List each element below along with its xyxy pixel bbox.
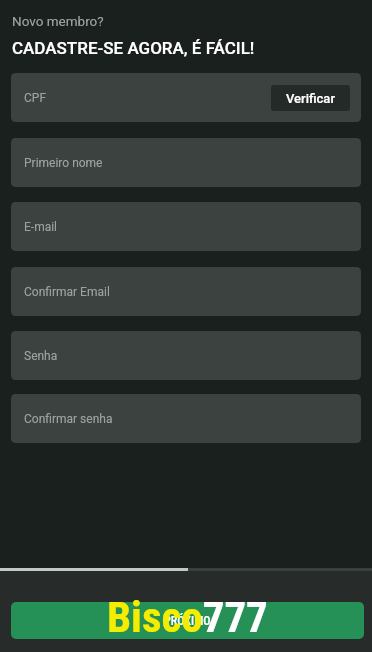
staticText: CPF (24, 91, 47, 105)
staticText: Senha (24, 349, 58, 363)
staticText: Primeiro nome (24, 156, 103, 170)
button[interactable]: E-mail (11, 202, 361, 251)
staticText: PRÓXIMO (164, 614, 211, 628)
button[interactable]: Verificar (271, 85, 350, 111)
staticText: Confirmar senha (24, 412, 113, 426)
button[interactable]: Confirmar Email (11, 267, 361, 316)
staticText: E-mail (24, 220, 58, 234)
staticText: Verificar (286, 91, 335, 106)
staticText: Novo membro? (12, 13, 104, 29)
staticText: CADASTRE-SE AGORA, É FÁCIL! (12, 38, 255, 58)
button[interactable]: Senha (11, 331, 361, 380)
button[interactable]: Primeiro nome (11, 138, 361, 187)
button[interactable]: Confirmar senha (11, 394, 361, 443)
button[interactable]: CPF (11, 73, 361, 122)
button[interactable]: PRÓXIMO (11, 602, 364, 639)
staticText: Bisco777 (107, 592, 268, 642)
staticText: Confirmar Email (24, 285, 110, 299)
